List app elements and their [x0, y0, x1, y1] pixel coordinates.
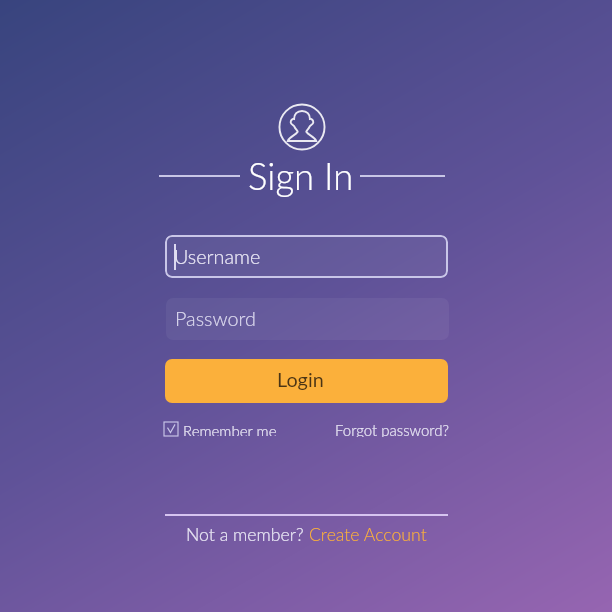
button[interactable]: Password: [166, 298, 449, 340]
button[interactable]: Forgot password?: [335, 421, 449, 437]
staticText: Forgot password?: [335, 421, 449, 437]
staticText: Not a member?: [186, 524, 309, 545]
staticText: Login: [277, 367, 324, 391]
staticText: Password: [175, 306, 256, 330]
button[interactable]: Login: [165, 359, 448, 403]
staticText: Username: [174, 244, 261, 268]
button[interactable]: Remember me: [164, 422, 277, 436]
staticText: Remember me: [183, 422, 277, 436]
other: User avatar: [278, 103, 326, 151]
staticText: Sign In: [248, 154, 354, 198]
button[interactable]: Create Account: [309, 524, 427, 545]
button[interactable]: Username: [165, 235, 448, 278]
